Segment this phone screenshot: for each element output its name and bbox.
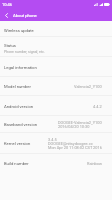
button[interactable]: Status [0,37,112,57]
button[interactable]: Build number [0,154,112,172]
staticText: 3.4.5 DOOGEE@nitsydoogee.cc Mon Apr 20 1… [48,137,102,150]
button[interactable]: Wireless update [0,21,112,37]
staticText: Baseband version [4,122,38,127]
button[interactable]: Baseband version [0,116,112,133]
staticText: Android version [4,104,34,109]
staticText: DOOGEE-Valencia2_Y100 2016/04/20 10:30 [58,120,102,129]
staticText: Status [4,43,16,48]
button[interactable]: Legal information [0,57,112,77]
staticText: Rainbow [87,161,102,166]
staticText: Kernel version [4,141,31,146]
staticText: About phone [13,13,37,18]
staticText: Model number [4,84,31,89]
button[interactable]: Kernel version [0,133,112,154]
staticText: 10:46 [2,2,12,7]
button[interactable]: Android version [0,96,112,116]
staticText: Phone number, signal, etc. [4,50,45,54]
staticText: 4.4.2 [93,104,102,109]
staticText: Wireless update [4,28,34,33]
staticText: Legal information [4,65,37,70]
staticText: Valencia2_Y100 [74,84,102,89]
button[interactable]: Back [0,9,13,21]
button[interactable]: Model number [0,77,112,96]
staticText: Build number [4,161,29,166]
